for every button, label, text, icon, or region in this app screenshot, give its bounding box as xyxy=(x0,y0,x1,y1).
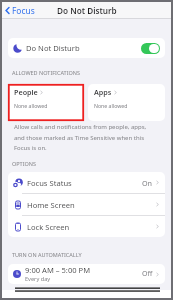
staticText: People xyxy=(14,87,38,97)
staticText: Do Not Disturb xyxy=(57,5,117,16)
staticText: 9:00 AM – 5:00 PM xyxy=(25,265,91,275)
staticText: Allow calls and notifications from peopl… xyxy=(14,123,147,151)
staticText: Every day xyxy=(25,275,51,283)
staticText: Off xyxy=(142,269,153,279)
staticText: Lock Screen xyxy=(27,222,70,232)
staticText: Focus Status xyxy=(27,178,72,188)
button[interactable]: Focus xyxy=(2,3,38,18)
staticText: ALLOWED NOTIFICATIONS xyxy=(12,69,81,76)
staticText: OPTIONS xyxy=(12,160,37,167)
button[interactable]: Home Screen xyxy=(8,194,165,215)
button[interactable]: Do Not Disturb xyxy=(8,38,165,58)
staticText: Apps xyxy=(94,87,112,97)
button[interactable]: Lock Screen xyxy=(8,216,165,237)
button[interactable]: 9:00 AM – 5:00 PM xyxy=(8,264,165,284)
button[interactable]: People xyxy=(8,84,84,121)
staticText: Focus xyxy=(12,5,35,16)
staticText: None allowed xyxy=(14,102,48,109)
staticText: None allowed xyxy=(94,102,128,109)
staticText: On xyxy=(142,178,153,188)
button[interactable]: Focus Status xyxy=(8,172,165,193)
staticText: TURN ON AUTOMATICALLY xyxy=(12,251,82,258)
button[interactable]: Apps xyxy=(88,84,165,121)
staticText: Home Screen xyxy=(27,200,75,210)
button[interactable]: Do Not Disturb toggle xyxy=(141,43,160,54)
staticText: Do Not Disturb xyxy=(26,43,80,53)
